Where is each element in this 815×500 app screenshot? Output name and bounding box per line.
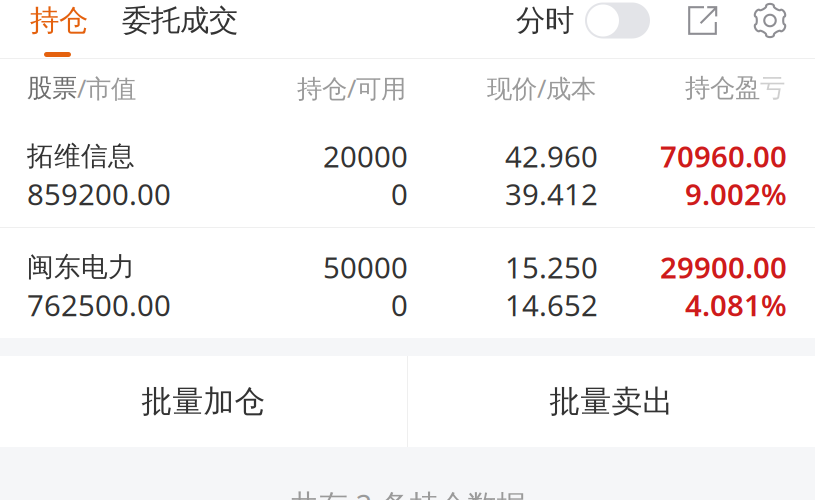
button[interactable]: 拓维信息 xyxy=(0,117,815,227)
staticText: 9.002% xyxy=(685,174,787,213)
staticText: 0 xyxy=(391,174,408,213)
button[interactable]: 持仓 xyxy=(0,0,112,41)
staticText: 委托成交 xyxy=(122,2,238,38)
staticText: 闽东电力 xyxy=(27,251,135,283)
staticText: 4.081% xyxy=(685,285,787,324)
staticText: 持仓盈 xyxy=(685,72,760,103)
button[interactable]: 设置 xyxy=(753,3,787,37)
button[interactable]: 分享 xyxy=(688,6,717,35)
button[interactable]: 批量卖出 xyxy=(408,356,815,447)
button[interactable]: 分时切换 xyxy=(585,2,650,38)
staticText: 亏 xyxy=(760,72,785,103)
staticText: 20000 xyxy=(323,136,408,175)
staticText: 批量卖出 xyxy=(549,383,673,420)
staticText: 29900.00 xyxy=(660,247,787,286)
staticText: 859200.00 xyxy=(27,174,171,213)
staticText: 50000 xyxy=(323,247,408,286)
button[interactable]: 闽东电力 xyxy=(0,228,815,338)
staticText: 股票 xyxy=(27,72,77,103)
button[interactable]: 委托成交 xyxy=(112,0,248,41)
button[interactable]: 批量加仓 xyxy=(0,356,407,447)
staticText: 持仓/可用 xyxy=(297,71,406,105)
staticText: 762500.00 xyxy=(27,285,171,324)
staticText: 39.412 xyxy=(505,174,598,213)
staticText: 14.652 xyxy=(505,285,598,324)
staticText: 70960.00 xyxy=(660,136,787,175)
staticText: 现价/成本 xyxy=(487,71,596,105)
staticText: 持仓 xyxy=(30,2,88,38)
staticText: /市值 xyxy=(77,71,136,105)
staticText: 共有 2 条持仓数据 xyxy=(289,485,525,500)
staticText: 批量加仓 xyxy=(141,383,265,420)
staticText: 拓维信息 xyxy=(27,140,135,172)
staticText: 15.250 xyxy=(505,247,598,286)
staticText: 42.960 xyxy=(505,136,598,175)
staticText: 0 xyxy=(391,285,408,324)
staticText: 分时 xyxy=(516,2,574,38)
